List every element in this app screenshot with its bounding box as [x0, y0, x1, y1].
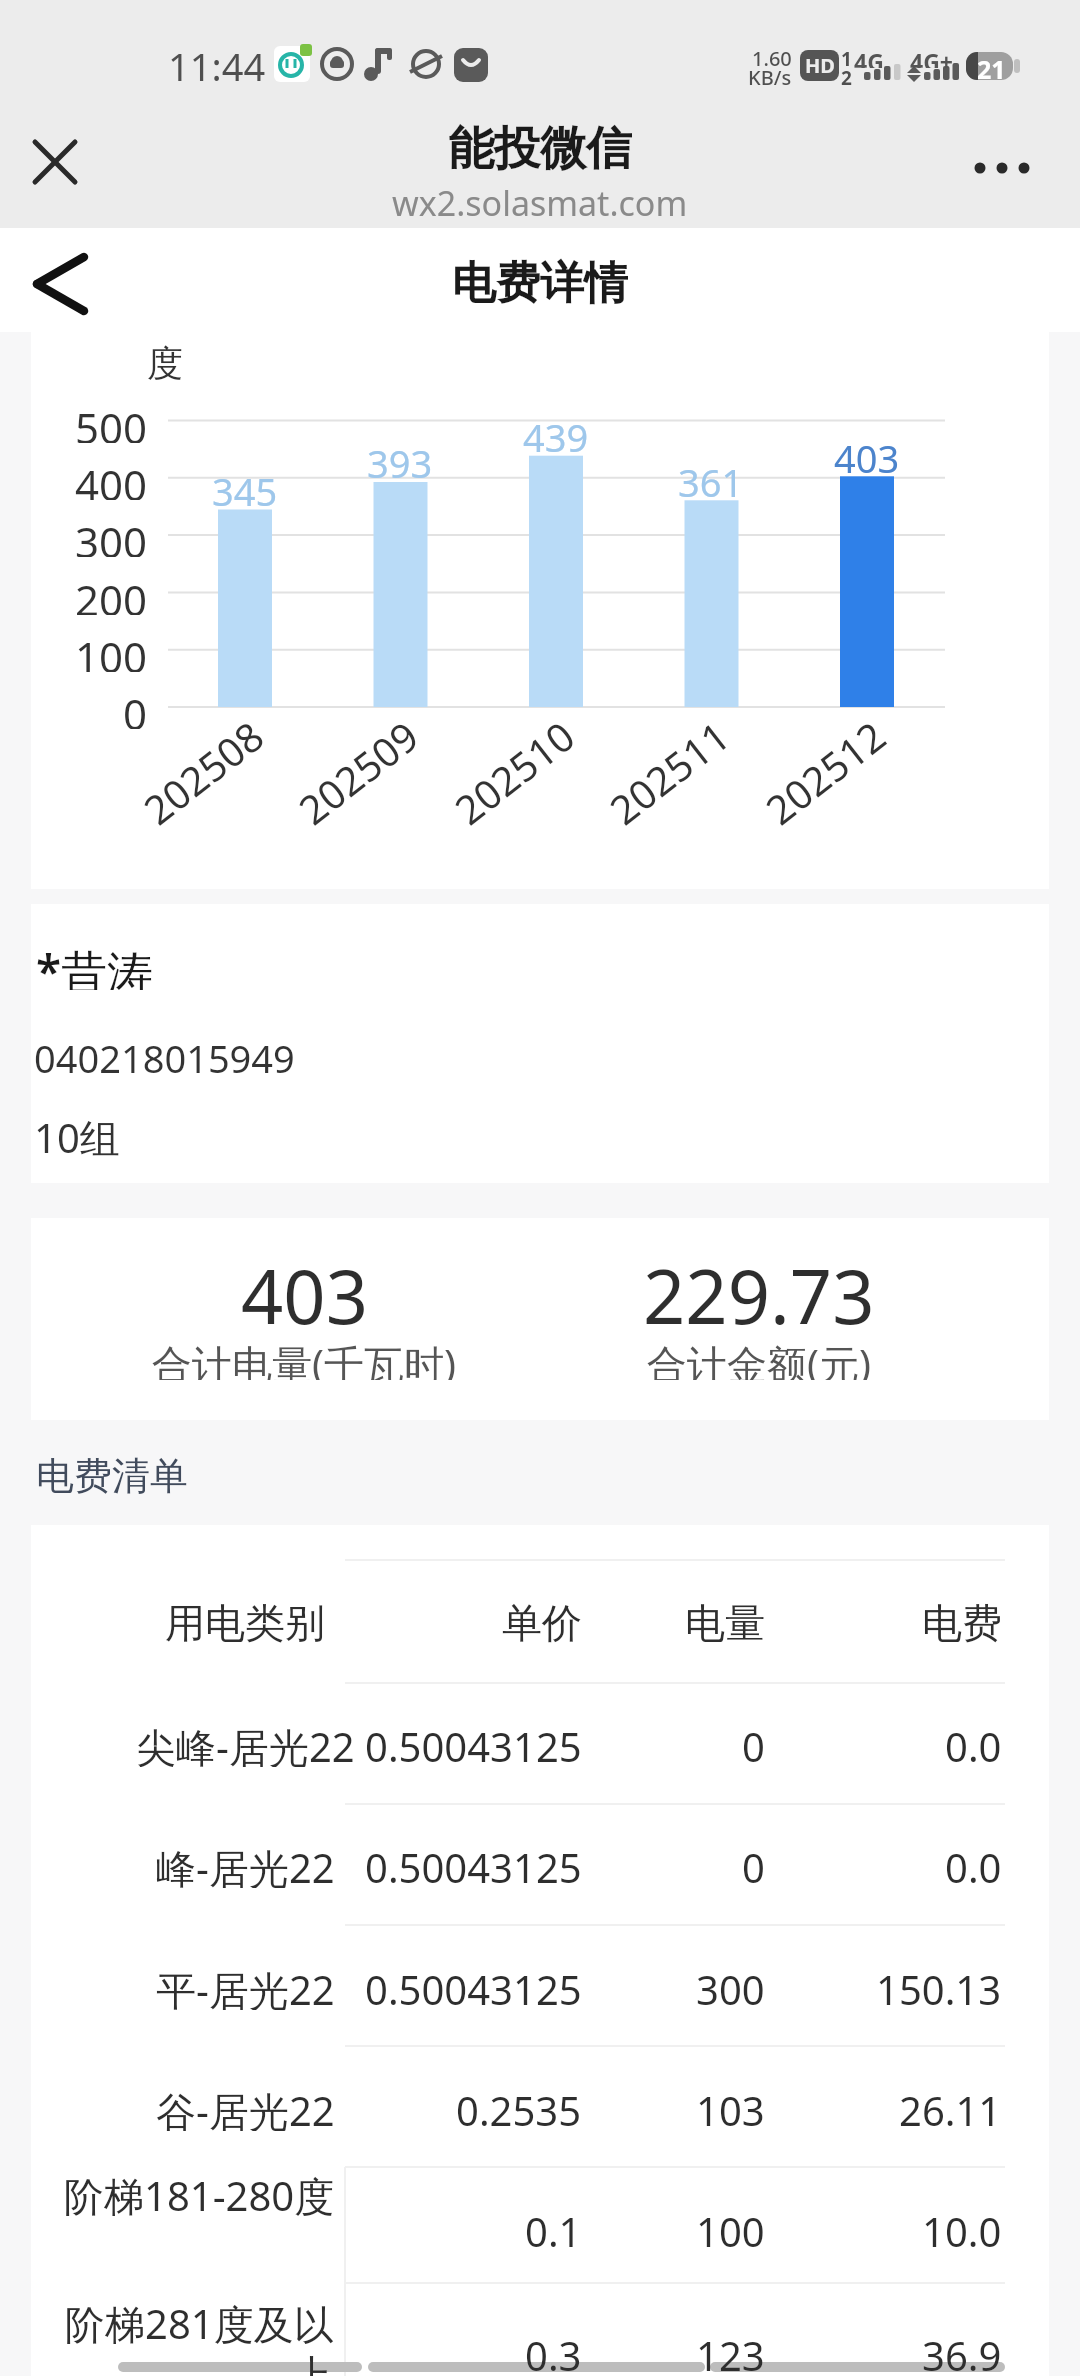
staticText: 100: [696, 2204, 765, 2252]
staticText: 21: [977, 52, 1006, 80]
staticText: 11:44: [168, 40, 266, 88]
staticText: 393: [367, 437, 433, 481]
staticText: 403: [241, 1245, 368, 1325]
staticText: 202510: [443, 708, 579, 828]
staticText: 2: [841, 65, 852, 85]
staticText: 229.73: [643, 1245, 875, 1325]
staticText: *昔涛: [36, 940, 154, 990]
staticText: HD: [805, 52, 835, 79]
staticText: 0: [123, 685, 148, 729]
staticText: 300: [75, 513, 148, 557]
staticText: 电量: [685, 1598, 765, 1646]
staticText: 0.50043125: [365, 1719, 582, 1767]
staticText: wx2.solasmat.com: [392, 180, 688, 220]
staticText: 峰-居光22: [156, 1840, 335, 1888]
staticText: 200: [75, 571, 148, 615]
staticText: 谷-居光22: [156, 2083, 335, 2131]
staticText: 度: [147, 341, 183, 383]
staticText: 202511: [598, 708, 734, 828]
staticText: 150.13: [876, 1962, 1002, 2010]
staticText: 100: [75, 628, 148, 672]
staticText: 阶梯281度及以: [65, 2296, 334, 2344]
staticText: 0.3: [525, 2328, 582, 2376]
staticText: 345: [212, 465, 278, 509]
staticText: 040218015949: [34, 1032, 295, 1078]
staticText: 123: [696, 2328, 765, 2376]
staticText: 合计电量(千瓦时): [152, 1336, 456, 1380]
staticText: 10组: [34, 1110, 120, 1156]
staticText: 1.60: [752, 45, 792, 69]
button[interactable]: [33, 140, 77, 184]
staticText: 0.50043125: [365, 1840, 582, 1888]
staticText: 10.0: [922, 2204, 1002, 2252]
staticText: 403: [834, 432, 900, 476]
staticText: 电费: [922, 1598, 1002, 1646]
staticText: 400: [75, 456, 148, 500]
staticText: 500: [75, 399, 148, 443]
staticText: 4G: [854, 46, 884, 68]
staticText: 尖峰-居光22: [136, 1719, 355, 1767]
staticText: 4G+: [910, 46, 953, 68]
staticText: 300: [696, 1962, 765, 2010]
staticText: 0.2535: [456, 2083, 582, 2131]
staticText: 电费详情: [452, 256, 628, 310]
staticText: 0.50043125: [365, 1962, 582, 2010]
staticText: 0: [742, 1840, 765, 1888]
staticText: 0.0: [945, 1719, 1002, 1767]
staticText: 上: [292, 2350, 332, 2376]
staticText: 202512: [754, 708, 890, 828]
staticText: 阶梯181-280度: [64, 2168, 335, 2216]
staticText: 用电类别: [165, 1598, 325, 1646]
staticText: 103: [696, 2083, 765, 2131]
staticText: 0.1: [525, 2204, 582, 2252]
staticText: 合计金额(元): [647, 1336, 871, 1380]
staticText: 1: [841, 46, 852, 66]
staticText: 0.0: [945, 1840, 1002, 1888]
staticText: 能投微信: [448, 120, 632, 174]
staticText: 电费清单: [36, 1452, 188, 1496]
staticText: 361: [678, 456, 744, 500]
staticText: 439: [523, 411, 589, 455]
staticText: 26.11: [899, 2083, 1002, 2131]
staticText: 单价: [502, 1598, 582, 1646]
staticText: 202508: [132, 708, 268, 828]
staticText: 平-居光22: [156, 1962, 335, 2010]
button[interactable]: [30, 252, 90, 316]
button[interactable]: [970, 146, 1034, 190]
staticText: 202509: [287, 708, 423, 828]
staticText: 0: [742, 1719, 765, 1767]
staticText: KB/s: [748, 64, 792, 88]
staticText: 36.9: [922, 2328, 1002, 2376]
